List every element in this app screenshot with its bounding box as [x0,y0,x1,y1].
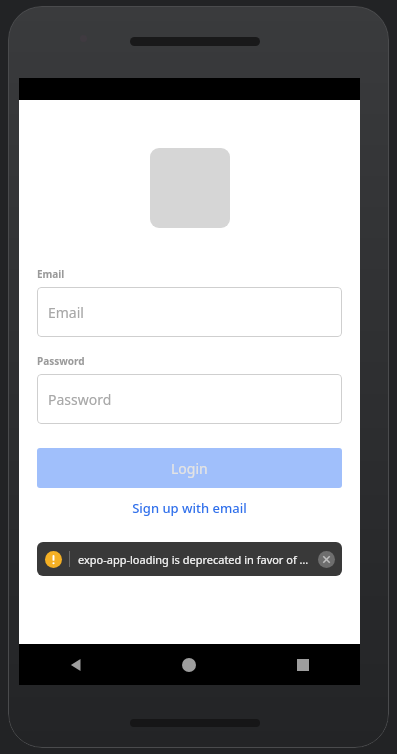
button[interactable]: Recent apps [246,644,360,685]
button[interactable]: Sign up with email [37,497,342,519]
button[interactable]: Password [37,374,342,424]
staticText: Email [37,267,65,281]
staticText: Sign up with email [132,499,247,517]
button[interactable]: Home [132,644,246,685]
button[interactable]: Dismiss [318,551,335,568]
button[interactable]: Login [37,448,342,488]
staticText: Email [48,303,84,322]
staticText: Password [37,354,85,368]
button[interactable]: Email [37,287,342,337]
staticText: Password [48,390,112,409]
staticText: expo-app-loading is deprecated in favor … [78,552,314,567]
staticText: Login [171,459,208,478]
button[interactable]: Back [19,644,132,685]
